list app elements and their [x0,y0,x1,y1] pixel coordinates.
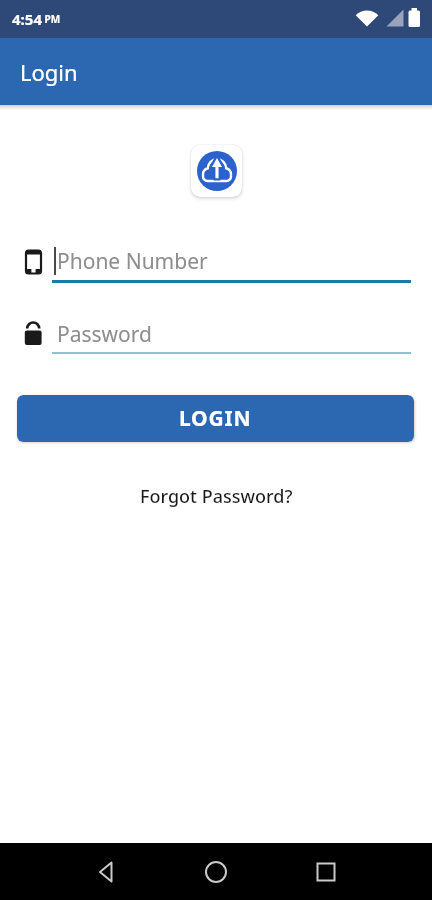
button[interactable] [161,843,271,900]
staticText: Password [57,320,152,349]
staticText: 4:54 [12,9,42,29]
staticText: PM [42,12,61,26]
button[interactable]: Forgot Password? [136,480,297,513]
button[interactable]: LOGIN [17,395,414,442]
staticText: Login [20,57,78,87]
button[interactable] [191,145,242,197]
staticText: Phone Number [57,247,208,276]
button[interactable] [51,843,161,900]
staticText: Forgot Password? [140,484,293,509]
staticText: LOGIN [179,404,252,433]
button[interactable]: Password [0,318,432,360]
button[interactable] [271,843,381,900]
button[interactable]: Phone Number [0,245,432,287]
